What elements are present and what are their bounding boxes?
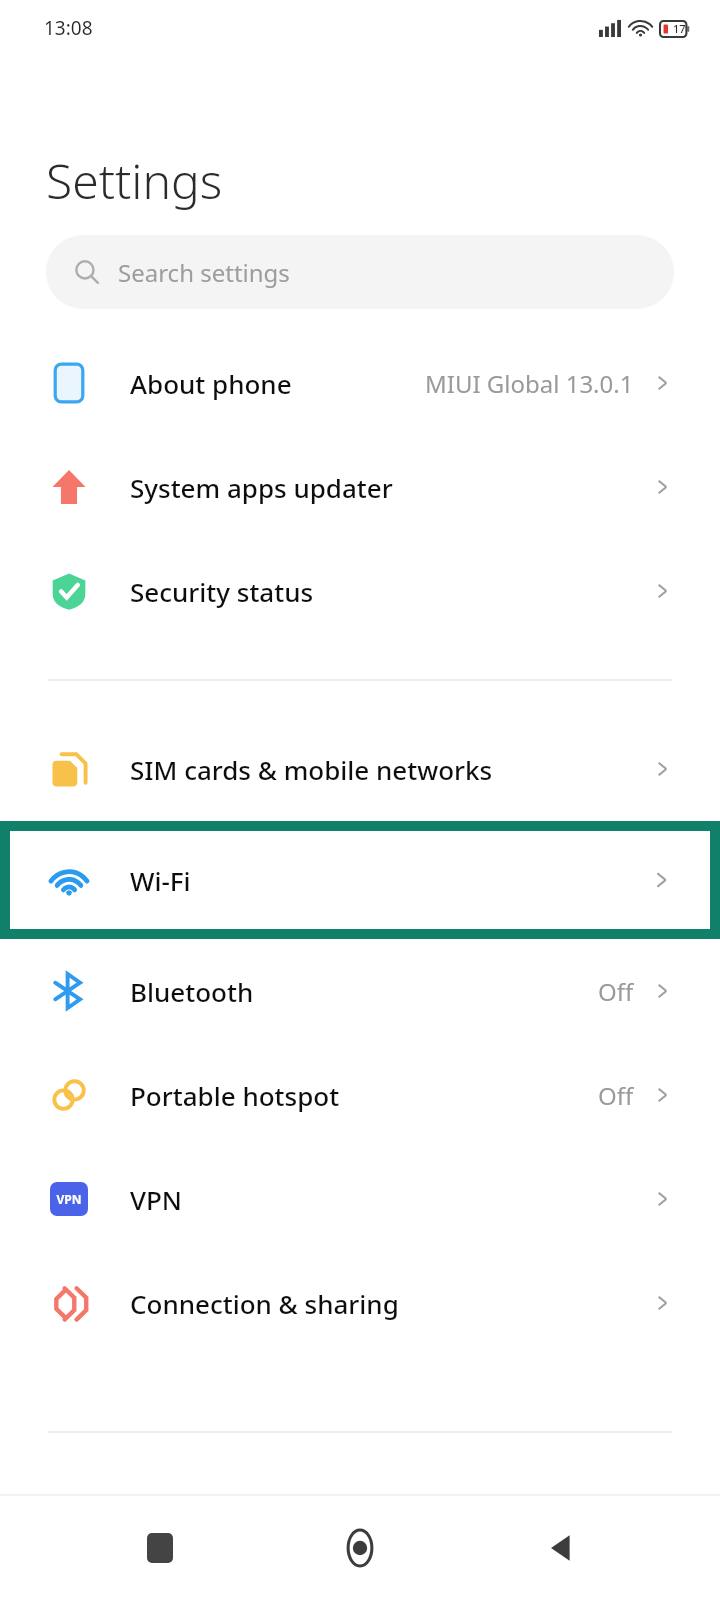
button[interactable]: SIM cards & mobile networks xyxy=(0,717,720,821)
staticText: Portable hotspot xyxy=(130,1078,340,1113)
button[interactable]: Bluetooth xyxy=(0,939,720,1043)
staticText: VPN xyxy=(130,1182,183,1217)
other: Wi-Fi xyxy=(46,857,92,903)
button[interactable]: Search settings xyxy=(46,235,674,309)
staticText: VPN xyxy=(56,1191,82,1207)
button[interactable]: Recents xyxy=(120,1508,200,1588)
staticText: MIUI Global 13.0.1 xyxy=(425,367,634,400)
staticText: Security status xyxy=(130,574,314,609)
staticText: Bluetooth xyxy=(130,974,254,1009)
staticText: Wi-Fi xyxy=(130,863,191,898)
staticText: System apps updater xyxy=(130,470,393,505)
button[interactable]: Back xyxy=(520,1508,600,1588)
staticText: 17 xyxy=(673,21,686,36)
staticText: SIM cards & mobile networks xyxy=(130,752,493,787)
button[interactable]: Connection & sharing xyxy=(0,1251,720,1355)
staticText: Search settings xyxy=(118,256,290,289)
button[interactable]: VPN xyxy=(0,1147,720,1251)
staticText: Off xyxy=(598,1079,634,1112)
button[interactable]: Wi-Fi xyxy=(10,831,710,929)
staticText: Settings xyxy=(46,148,223,213)
button[interactable]: Security status xyxy=(0,539,720,643)
button[interactable]: Portable hotspot xyxy=(0,1043,720,1147)
button[interactable]: Home xyxy=(320,1508,400,1588)
staticText: About phone xyxy=(130,366,292,401)
button[interactable]: About phone xyxy=(0,331,720,435)
staticText: Off xyxy=(598,975,634,1008)
button[interactable]: System apps updater xyxy=(0,435,720,539)
staticText: Connection & sharing xyxy=(130,1286,399,1321)
staticText: 13:08 xyxy=(44,15,93,41)
